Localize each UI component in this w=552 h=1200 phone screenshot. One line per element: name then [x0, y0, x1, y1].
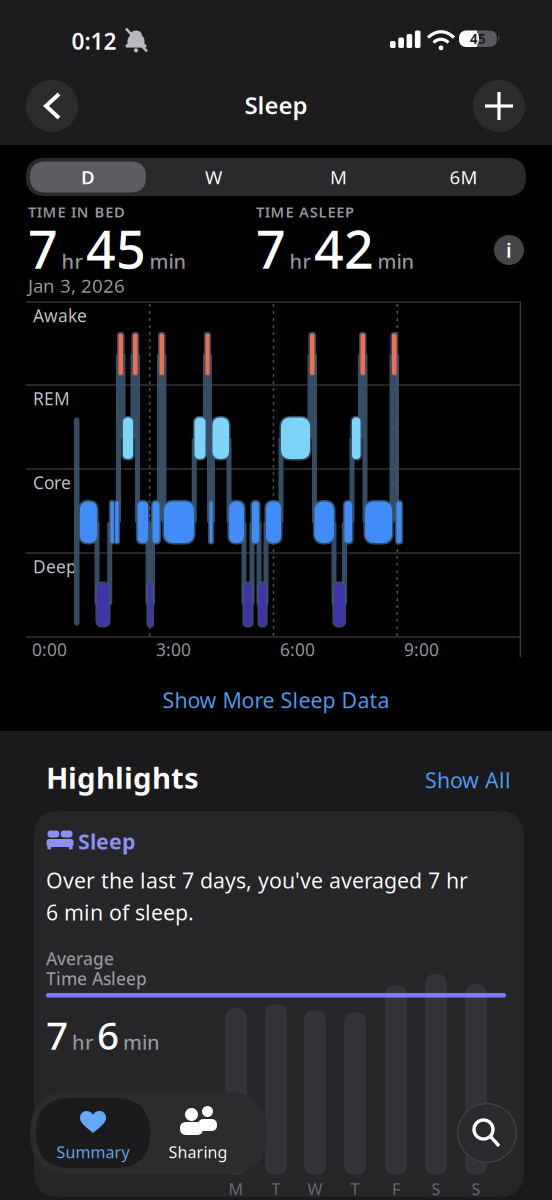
- staticText: T: [350, 1178, 359, 1200]
- staticText: 0:12: [71, 26, 116, 56]
- staticText: min: [123, 1029, 160, 1055]
- staticText: Sleep: [78, 827, 135, 855]
- staticText: 6: [97, 1009, 119, 1060]
- staticText: Highlights: [46, 758, 199, 797]
- staticText: 9:00: [404, 638, 439, 661]
- staticText: Jan 3, 2026: [28, 273, 125, 298]
- staticText: TIME IN BED: [28, 202, 125, 221]
- staticText: Awake: [33, 304, 87, 327]
- staticText: D: [81, 165, 95, 189]
- staticText: 7: [256, 214, 286, 283]
- staticText: 6:00: [280, 638, 315, 661]
- staticText: F: [392, 1178, 400, 1200]
- staticText: hr: [61, 248, 82, 274]
- staticText: Sharing: [168, 1141, 227, 1163]
- staticText: REM: [33, 387, 70, 410]
- staticText: T: [271, 1178, 280, 1200]
- staticText: 6M: [449, 165, 477, 189]
- staticText: i: [506, 237, 512, 263]
- staticText: Time Asleep: [46, 967, 147, 990]
- staticText: Average: [46, 947, 114, 970]
- staticText: hr: [289, 248, 310, 274]
- staticText: S: [471, 1178, 480, 1200]
- staticText: 0:00: [32, 638, 67, 661]
- staticText: M: [330, 165, 347, 189]
- staticText: W: [307, 1178, 322, 1200]
- staticText: TIME ASLEEP: [256, 202, 354, 221]
- staticText: Deep: [33, 555, 77, 578]
- staticText: 42: [314, 214, 374, 283]
- staticText: Show All: [425, 766, 511, 794]
- staticText: Show More Sleep Data: [162, 686, 389, 714]
- staticText: min: [377, 248, 414, 274]
- staticText: 45: [86, 214, 146, 283]
- staticText: W: [205, 165, 222, 189]
- staticText: 7: [28, 214, 58, 283]
- staticText: Over the last 7 days, you've averaged 7 …: [46, 866, 468, 894]
- staticText: Sleep: [244, 89, 307, 121]
- staticText: 7: [46, 1009, 68, 1060]
- staticText: 45: [470, 30, 486, 48]
- staticText: S: [431, 1178, 440, 1200]
- staticText: 3:00: [156, 638, 191, 661]
- staticText: 6 min of sleep.: [46, 898, 194, 926]
- staticText: Summary: [56, 1141, 129, 1163]
- staticText: hr: [72, 1029, 93, 1055]
- staticText: Core: [33, 471, 71, 494]
- staticText: min: [149, 248, 186, 274]
- staticText: M: [228, 1178, 243, 1200]
